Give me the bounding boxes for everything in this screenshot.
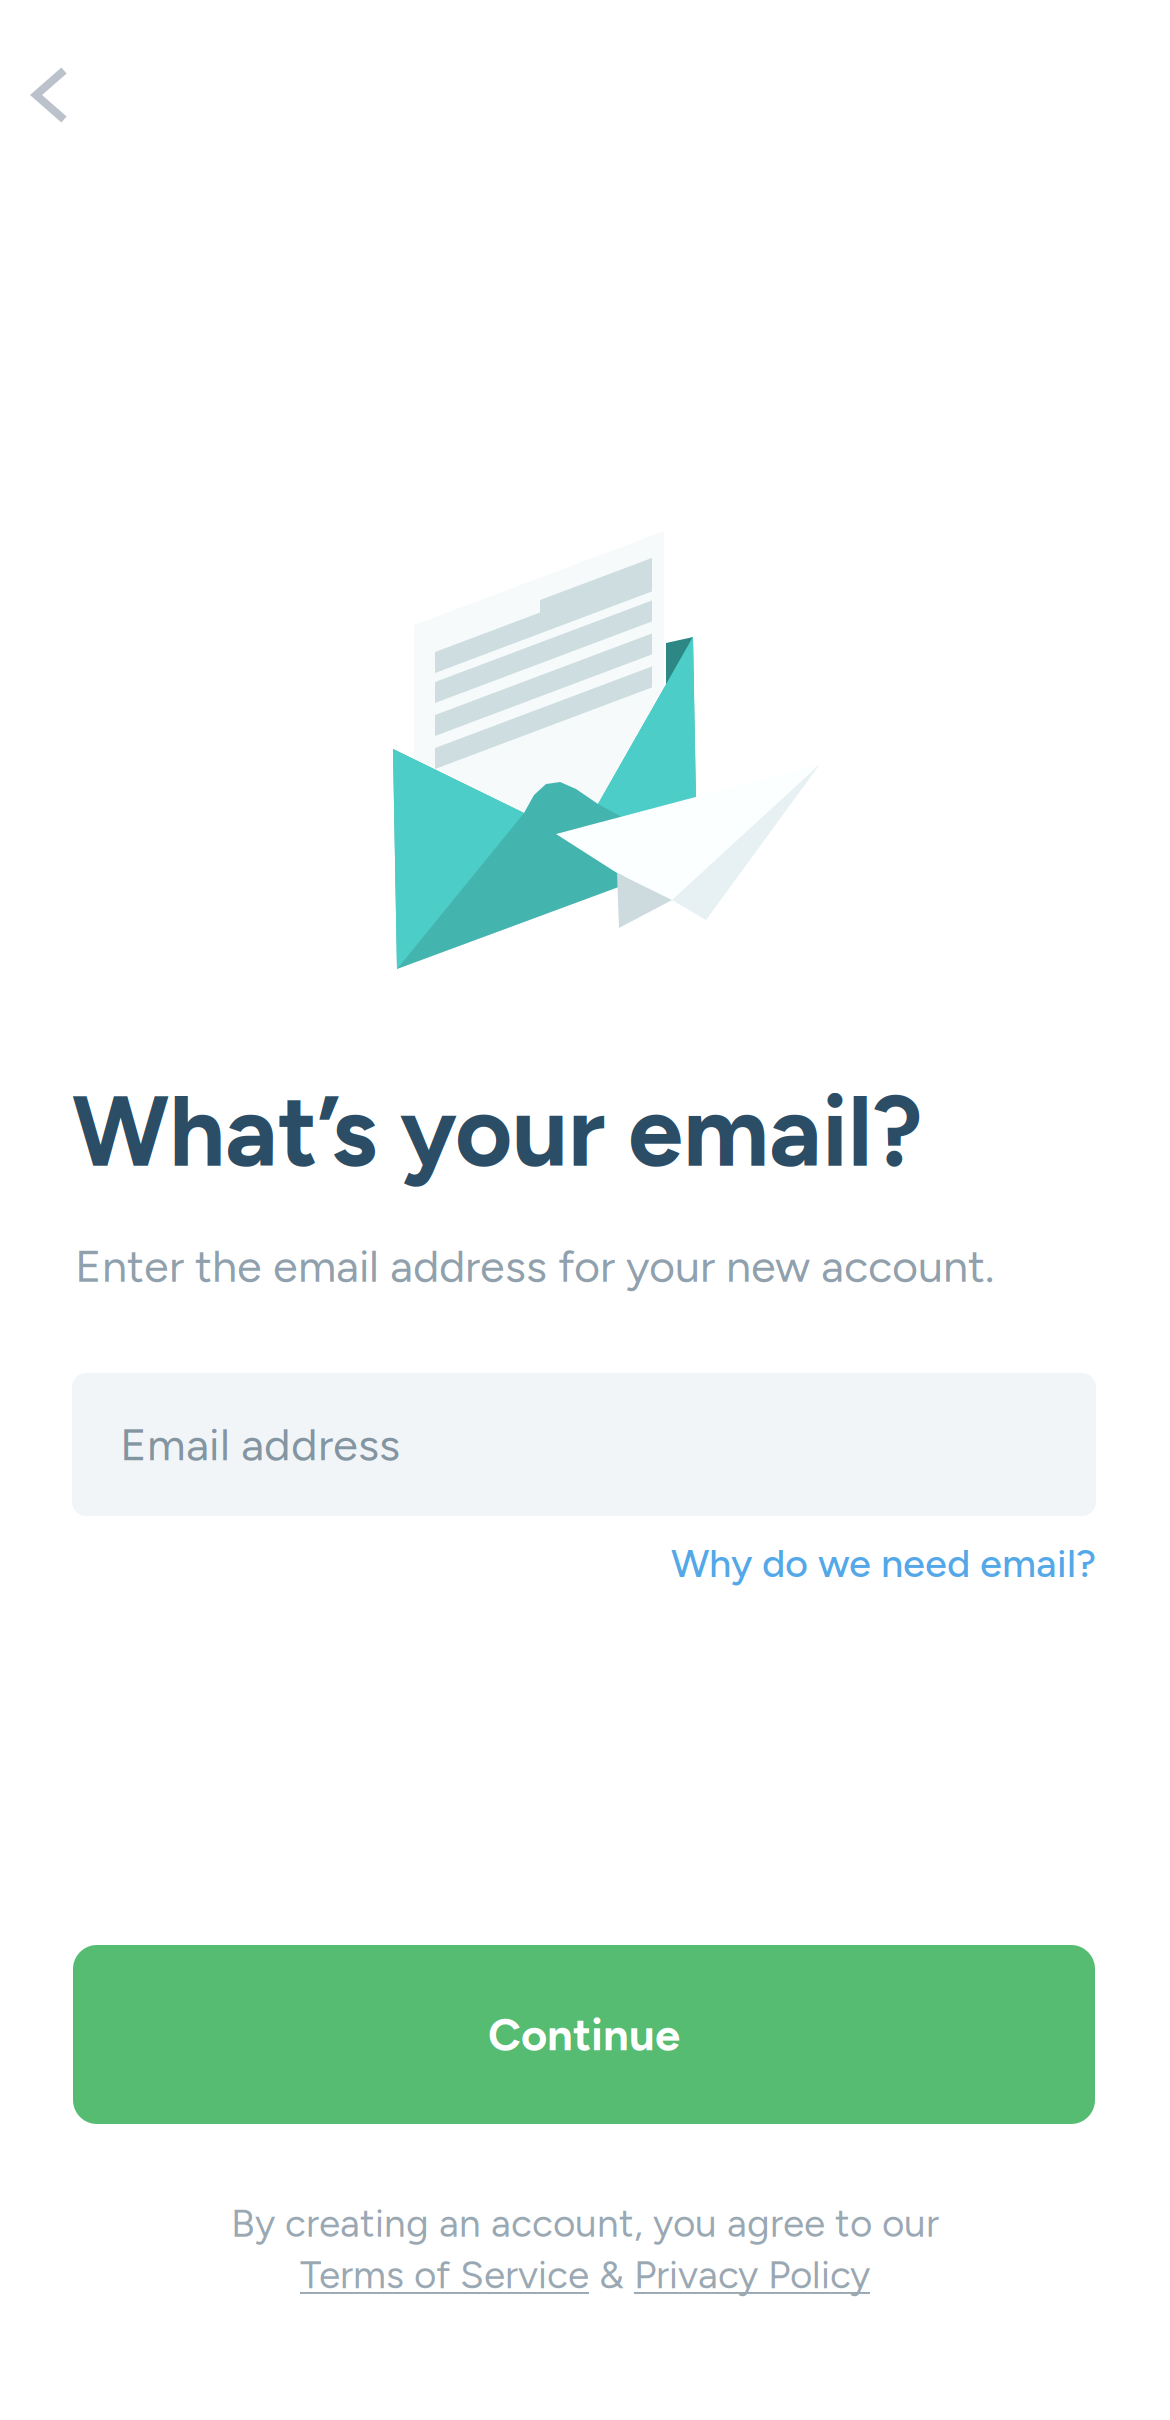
button[interactable]: Privacy Policy (634, 2251, 870, 2298)
button[interactable]: Terms of Service (300, 2251, 589, 2298)
staticText: & (589, 2251, 634, 2298)
staticText: By creating an account, you agree to our (231, 2200, 939, 2246)
button[interactable]: Back (0, 35, 110, 155)
staticText: What’s your email? (72, 1072, 923, 1190)
staticText: Continue (488, 2007, 680, 2062)
staticText: Why do we need email? (671, 1539, 1096, 1587)
button[interactable]: Why do we need email? (72, 1533, 1096, 1593)
staticText: Enter the email address for your new acc… (75, 1239, 994, 1293)
staticText: Terms of Service (300, 2251, 589, 2298)
staticText: Privacy Policy (634, 2251, 870, 2298)
button[interactable]: Continue (73, 1945, 1095, 2124)
staticText: Email address (120, 1417, 400, 1472)
